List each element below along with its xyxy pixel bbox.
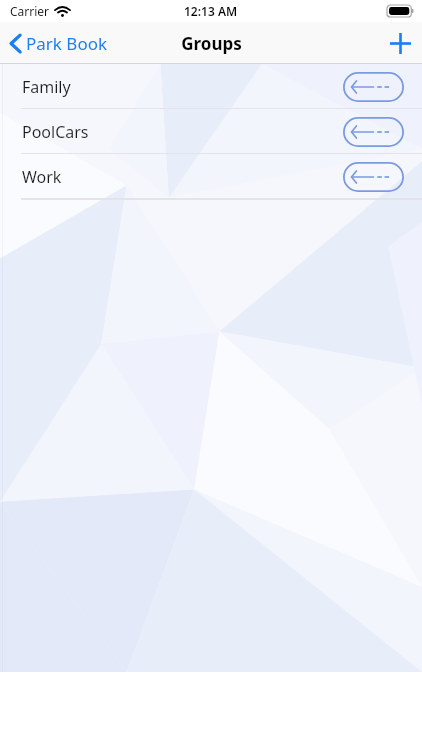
button[interactable]: Share group [343,117,404,147]
button[interactable]: PoolCars [0,109,422,154]
staticText: Park Book [26,32,108,55]
staticText: Family [22,76,71,98]
button[interactable]: Share group [343,72,404,102]
staticText: Groups [181,32,242,55]
staticText: Carrier [10,3,50,19]
button[interactable]: Share group [343,162,404,192]
button[interactable]: Family [0,64,422,109]
staticText: PoolCars [22,121,89,143]
staticText: 12:13 AM [184,3,238,19]
button[interactable]: Park Book [0,28,116,59]
button[interactable]: Add group [378,22,422,64]
button[interactable]: Work [0,154,422,199]
staticText: Work [22,166,62,188]
